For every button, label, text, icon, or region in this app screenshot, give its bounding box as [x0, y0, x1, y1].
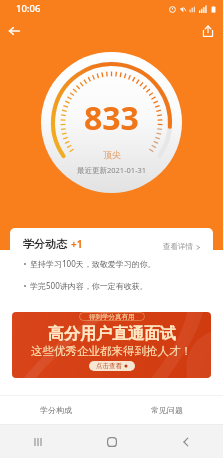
staticText: +1: [71, 237, 83, 251]
staticText: 高分用户直通面试: [48, 324, 176, 344]
button[interactable]: 学分动态: [10, 228, 213, 300]
staticText: 最近更新2021-01-31: [77, 165, 147, 175]
staticText: 学分动态: [23, 237, 67, 251]
staticText: 常见问题: [151, 405, 183, 415]
button[interactable]: 点击查看: [89, 361, 135, 371]
staticText: 坚持学习100天，致敬爱学习的你。: [30, 258, 156, 269]
button[interactable]: Recent apps: [0, 425, 75, 458]
staticText: 10:06: [16, 2, 41, 15]
button[interactable]: Back: [3, 20, 25, 42]
staticText: 学完500讲内容，你一定有收获。: [30, 280, 148, 291]
button[interactable]: 学分构成: [0, 396, 111, 424]
button[interactable]: 常见问题: [111, 396, 223, 424]
button[interactable]: Back: [149, 425, 223, 458]
staticText: 这些优秀企业都来得到抢人才！: [31, 344, 192, 358]
button[interactable]: Home: [75, 425, 149, 458]
staticText: 顶尖: [103, 149, 121, 160]
button[interactable]: 得到学分真有用: [12, 312, 211, 378]
staticText: 学分构成: [40, 405, 72, 415]
staticText: 查看详情: [163, 242, 193, 251]
button[interactable]: Share: [197, 20, 219, 42]
staticText: 833: [84, 96, 139, 140]
staticText: 得到学分真有用: [89, 313, 135, 321]
staticText: 点击查看: [96, 362, 122, 370]
